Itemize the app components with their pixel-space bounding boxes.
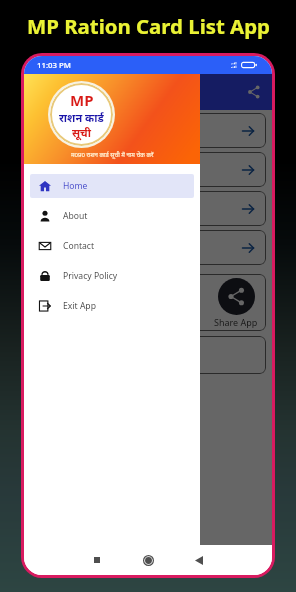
staticText: म0प्र0 राशन कार्ड सूची में नाम चेक करें	[71, 151, 154, 159]
button[interactable]: Share	[243, 81, 265, 103]
staticText: MP Ration Card List App	[27, 12, 270, 40]
staticText: About	[63, 210, 88, 222]
button[interactable]: Home	[24, 171, 200, 201]
button[interactable]: Home	[136, 548, 160, 572]
button[interactable]	[30, 152, 266, 187]
button[interactable]: Recent apps	[85, 548, 109, 572]
staticText: सूची	[72, 125, 91, 140]
staticText: MP	[70, 90, 94, 110]
button[interactable]: Contact	[24, 231, 200, 261]
button[interactable]: Share App	[30, 274, 266, 331]
staticText: Home	[63, 180, 88, 192]
staticText: Contact	[63, 240, 95, 252]
staticText: 11:03 PM	[37, 60, 71, 71]
button[interactable]: About	[24, 201, 200, 231]
staticText: Exit App	[63, 300, 96, 312]
staticText: Privacy Policy	[63, 270, 118, 282]
staticText: Share App	[214, 316, 258, 328]
staticText: राशन कार्ड	[59, 110, 104, 125]
button[interactable]	[30, 191, 266, 226]
button[interactable]: Exit App	[24, 291, 200, 321]
button[interactable]: Back	[187, 548, 211, 572]
button[interactable]	[30, 113, 266, 148]
button[interactable]: Privacy Policy	[24, 261, 200, 291]
button[interactable]	[30, 230, 266, 265]
